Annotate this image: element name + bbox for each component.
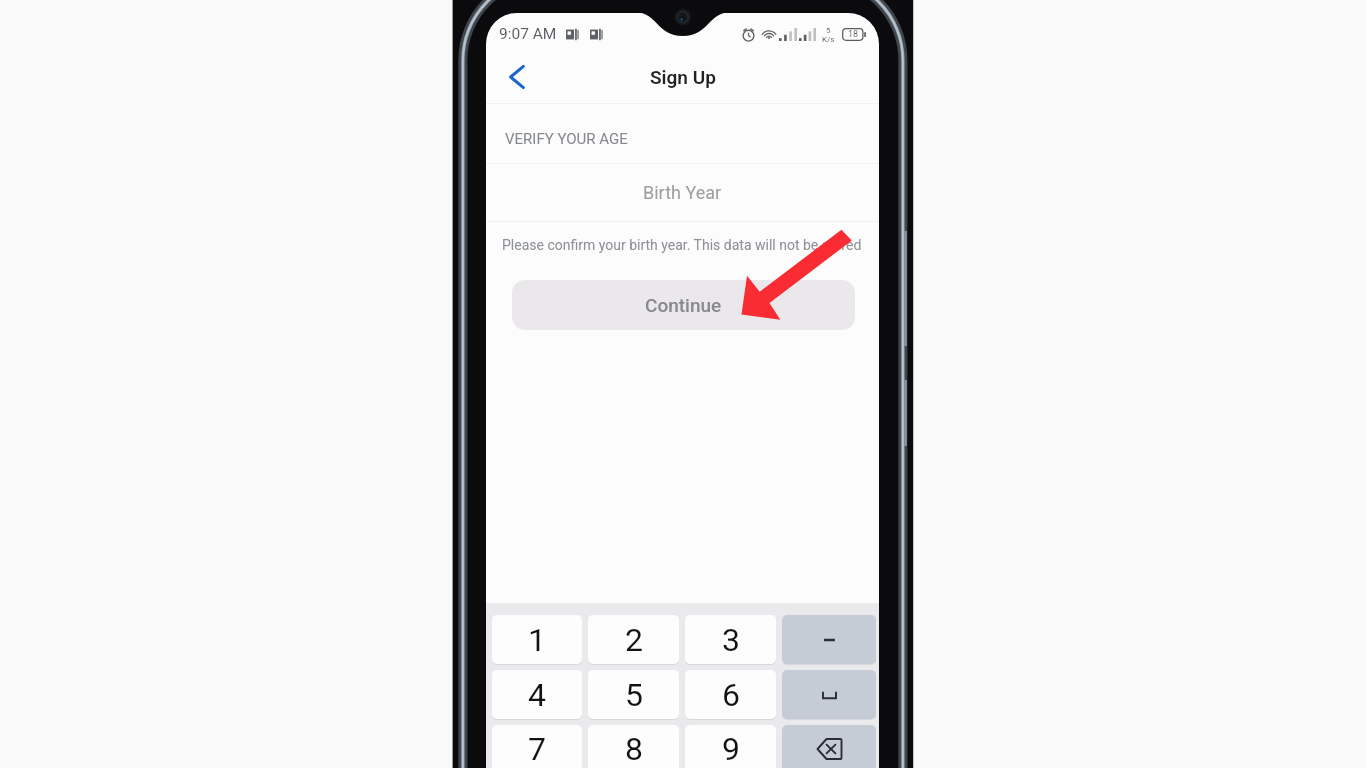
button[interactable]: Back <box>499 59 535 95</box>
button[interactable]: 7 <box>492 725 582 768</box>
button[interactable]: 6 <box>685 670 776 719</box>
button[interactable]: space <box>782 670 876 719</box>
staticText: 4 <box>528 676 546 714</box>
staticText: Birth Year <box>643 182 722 203</box>
staticText: 5 <box>625 676 643 714</box>
staticText: 2 <box>625 621 643 659</box>
staticText: 5 <box>826 26 831 35</box>
staticText: VERIFY YOUR AGE <box>505 130 628 148</box>
button[interactable]: del <box>782 725 876 768</box>
staticText: Continue <box>645 294 722 316</box>
button[interactable]: 2 <box>588 615 679 664</box>
staticText: 7 <box>528 730 546 768</box>
staticText: 18 <box>848 29 859 40</box>
staticText: 9 <box>722 730 740 768</box>
staticText: 1 <box>528 621 546 659</box>
staticText: 9:07 AM <box>499 25 557 43</box>
button[interactable]: Birth Year <box>486 164 879 221</box>
button[interactable]: 9 <box>685 725 776 768</box>
button[interactable]: 3 <box>685 615 776 664</box>
button[interactable]: 8 <box>588 725 679 768</box>
staticText: Please confirm your birth year. This dat… <box>502 237 862 253</box>
staticText: Sign Up <box>650 66 716 88</box>
staticText: 6 <box>722 676 740 714</box>
staticText: K/s <box>822 35 835 43</box>
staticText: 8 <box>625 730 643 768</box>
staticText: 3 <box>722 621 740 659</box>
button[interactable]: minus <box>782 615 876 664</box>
button[interactable]: 1 <box>492 615 582 664</box>
button[interactable]: Continue <box>512 280 855 330</box>
button[interactable]: 5 <box>588 670 679 719</box>
button[interactable]: 4 <box>492 670 582 719</box>
